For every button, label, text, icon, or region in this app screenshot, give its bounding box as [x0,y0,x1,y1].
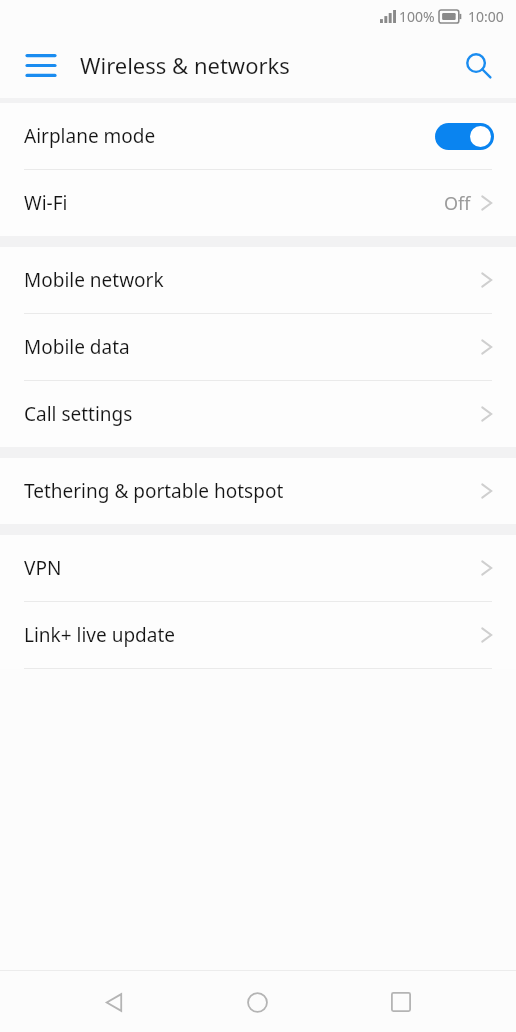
button[interactable]: Mobile data [0,314,516,380]
button[interactable]: Recent apps [372,973,430,1031]
button[interactable]: Airplane mode [0,103,516,169]
staticText: Mobile data [24,334,130,360]
staticText: Mobile network [24,267,164,293]
button[interactable]: Menu [14,38,68,92]
staticText: Wi-Fi [24,190,68,216]
button[interactable]: Wi-Fi [0,170,516,236]
button[interactable]: VPN [0,535,516,601]
button[interactable]: Search [452,39,504,91]
staticText: Wireless & networks [80,50,290,80]
button[interactable]: Call settings [0,381,516,447]
button[interactable]: Home [228,973,286,1031]
staticText: Link+ live update [24,622,176,648]
staticText: Call settings [24,401,133,427]
staticText: Tethering & portable hotspot [24,478,284,504]
staticText: 100% [399,7,435,26]
staticText: 10:00 [468,7,504,26]
staticText: Airplane mode [24,123,156,149]
staticText: Off [444,191,471,216]
button[interactable]: Back [85,973,143,1031]
button[interactable]: Tethering & portable hotspot [0,458,516,524]
button[interactable]: Mobile network [0,247,516,313]
button[interactable]: Airplane mode toggle [435,123,494,150]
staticText: VPN [24,555,62,581]
button[interactable]: Link+ live update [0,602,516,668]
